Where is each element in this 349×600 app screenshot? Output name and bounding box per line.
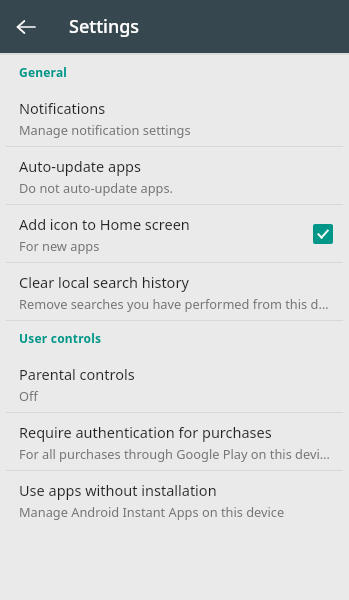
button[interactable]: Clear local search history [0, 263, 349, 320]
staticText: Off [19, 387, 38, 404]
staticText: Manage Android Instant Apps on this devi… [19, 503, 285, 520]
button[interactable]: Parental controls [0, 355, 349, 412]
staticText: For new apps [19, 237, 100, 254]
staticText: Clear local search history [19, 272, 189, 292]
staticText: Notifications [19, 98, 106, 118]
button[interactable]: Add icon to Home screen checkbox [313, 224, 333, 244]
button[interactable]: Notifications [0, 89, 349, 146]
button[interactable]: Back [8, 9, 44, 45]
staticText: Parental controls [19, 364, 135, 384]
staticText: Add icon to Home screen [19, 214, 190, 234]
staticText: Remove searches you have performed from … [19, 295, 333, 312]
button[interactable]: Auto-update apps [0, 147, 349, 204]
staticText: User controls [19, 330, 102, 346]
staticText: Use apps without installation [19, 480, 217, 500]
staticText: For all purchases through Google Play on… [19, 445, 333, 462]
staticText: Do not auto-update apps. [19, 179, 174, 196]
staticText: Settings [69, 14, 140, 39]
staticText: Require authentication for purchases [19, 422, 272, 442]
staticText: General [19, 64, 68, 80]
button[interactable]: Require authentication for purchases [0, 413, 349, 470]
staticText: Auto-update apps [19, 156, 141, 176]
staticText: Manage notification settings [19, 121, 191, 138]
button[interactable]: Add icon to Home screen [0, 205, 349, 262]
button[interactable]: Use apps without installation [0, 471, 349, 528]
